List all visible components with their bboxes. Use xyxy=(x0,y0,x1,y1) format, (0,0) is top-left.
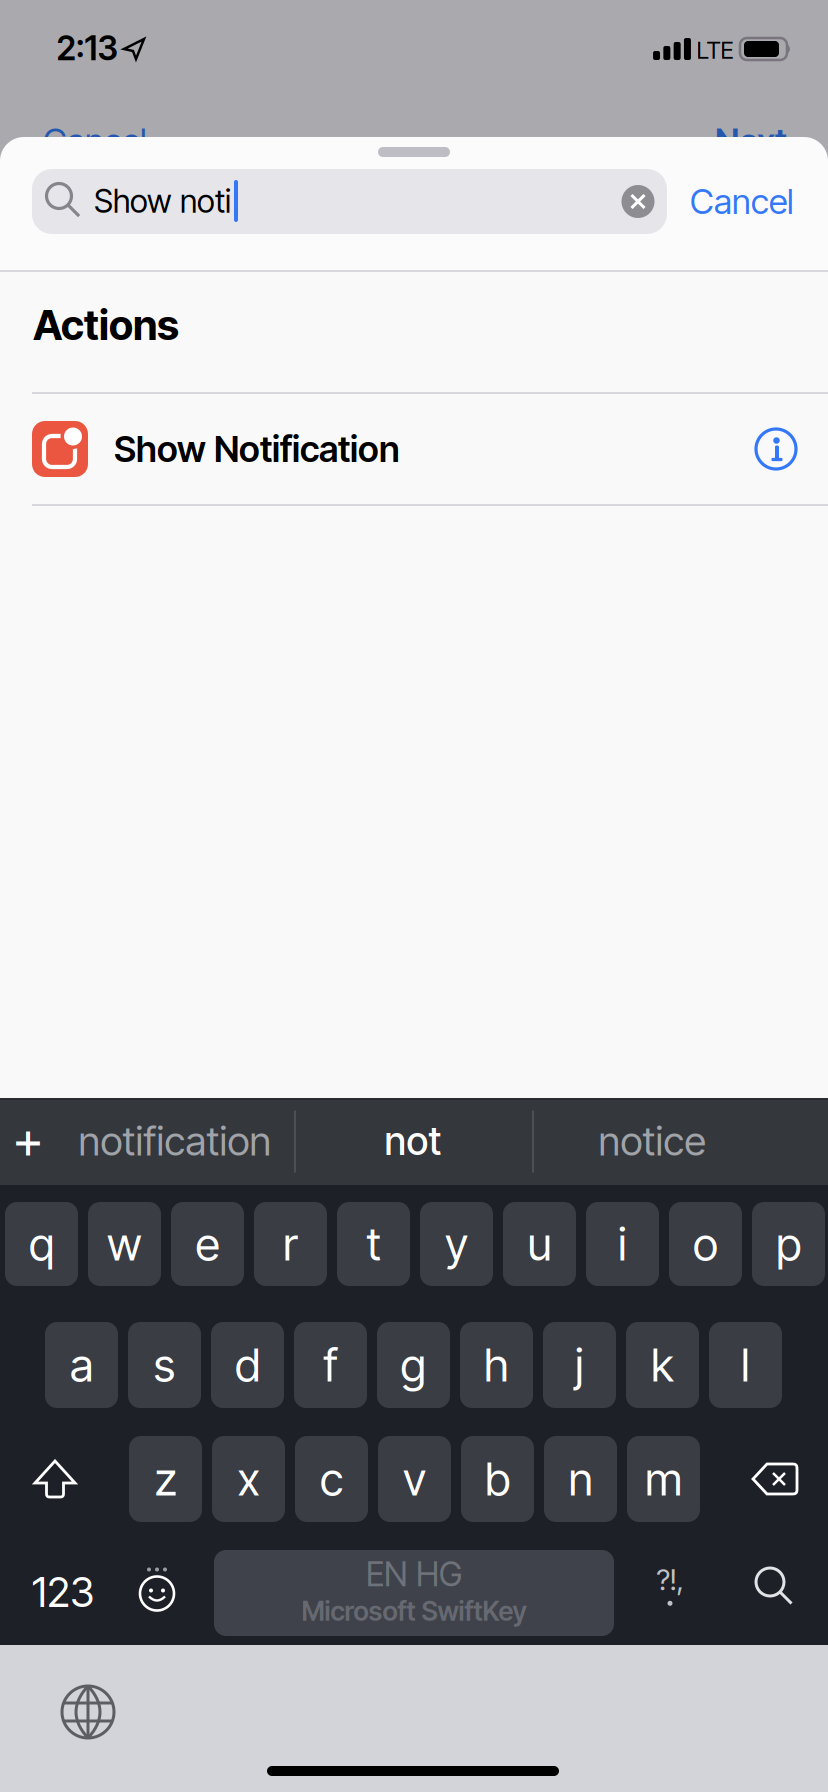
button[interactable]: d xyxy=(211,1322,284,1408)
staticText: h xyxy=(484,1338,509,1392)
staticText: Actions xyxy=(33,301,179,349)
staticText: j xyxy=(575,1338,584,1392)
staticText: w xyxy=(107,1217,142,1271)
button[interactable]: w xyxy=(88,1202,161,1286)
button[interactable]: i xyxy=(586,1202,659,1286)
staticText: Cancel xyxy=(43,121,147,161)
button[interactable]: Shift xyxy=(35,1461,75,1497)
staticText: p xyxy=(776,1217,801,1271)
staticText: f xyxy=(323,1338,337,1392)
staticText: EN HG xyxy=(366,1554,462,1594)
staticText: m xyxy=(645,1452,682,1506)
button[interactable]: x xyxy=(212,1436,285,1522)
staticText: d xyxy=(235,1338,260,1392)
button[interactable]: f xyxy=(294,1322,367,1408)
button[interactable]: Show Notification xyxy=(0,393,828,505)
staticText: notice xyxy=(598,1117,705,1165)
button[interactable]: b xyxy=(461,1436,534,1522)
staticText: Microsoft SwiftKey xyxy=(301,1595,526,1627)
button[interactable]: Add word xyxy=(12,1109,43,1169)
button[interactable]: y xyxy=(420,1202,493,1286)
staticText: not xyxy=(384,1118,441,1164)
button[interactable]: q xyxy=(5,1202,78,1286)
button[interactable]: 123 xyxy=(32,1568,94,1616)
button[interactable]: e xyxy=(171,1202,244,1286)
staticText: k xyxy=(651,1338,674,1392)
button[interactable]: n xyxy=(544,1436,617,1522)
staticText: t xyxy=(366,1217,380,1271)
button[interactable]: g xyxy=(377,1322,450,1408)
staticText: n xyxy=(568,1452,592,1506)
button[interactable]: Punctuation xyxy=(656,1562,683,1606)
staticText: + xyxy=(12,1109,43,1169)
button[interactable]: u xyxy=(503,1202,576,1286)
button[interactable]: h xyxy=(460,1322,533,1408)
staticText: 2:13 xyxy=(56,28,117,68)
button[interactable]: s xyxy=(128,1322,201,1408)
button[interactable]: notice xyxy=(598,1117,705,1165)
staticText: c xyxy=(320,1452,343,1506)
button[interactable]: Search xyxy=(754,1566,793,1605)
button[interactable]: Next keyboard xyxy=(62,1686,114,1738)
button[interactable]: a xyxy=(45,1322,118,1408)
button[interactable]: notification xyxy=(78,1117,271,1165)
staticText: 123 xyxy=(32,1568,94,1616)
staticText: o xyxy=(693,1217,718,1271)
button[interactable]: j xyxy=(543,1322,616,1408)
staticText: a xyxy=(70,1338,93,1392)
button[interactable]: Emoji xyxy=(140,1567,174,1610)
button[interactable]: Delete xyxy=(753,1464,797,1494)
staticText: notification xyxy=(78,1117,271,1165)
staticText: Show noti xyxy=(94,182,231,220)
staticText: i xyxy=(618,1217,627,1271)
button[interactable]: t xyxy=(337,1202,410,1286)
staticText: l xyxy=(741,1338,750,1392)
button[interactable]: z xyxy=(129,1436,202,1522)
button[interactable]: Cancel xyxy=(690,181,794,222)
button[interactable]: o xyxy=(669,1202,742,1286)
staticText: u xyxy=(527,1217,551,1271)
staticText: s xyxy=(153,1338,175,1392)
staticText: v xyxy=(403,1452,426,1506)
button[interactable]: m xyxy=(627,1436,700,1522)
staticText: z xyxy=(154,1452,176,1506)
staticText: Show Notification xyxy=(114,428,400,470)
staticText: r xyxy=(283,1217,298,1271)
button[interactable]: not xyxy=(384,1118,441,1164)
button[interactable]: Show noti xyxy=(32,169,667,234)
button[interactable]: r xyxy=(254,1202,327,1286)
staticText: ?!, xyxy=(656,1562,683,1597)
staticText: e xyxy=(195,1217,219,1271)
button[interactable]: Details xyxy=(756,429,796,469)
staticText: q xyxy=(29,1217,54,1271)
staticText: LTE xyxy=(696,36,733,64)
button[interactable]: Space xyxy=(214,1550,614,1636)
staticText: g xyxy=(400,1338,426,1392)
staticText: Next xyxy=(715,121,787,161)
staticText: x xyxy=(237,1452,259,1506)
staticText: Cancel xyxy=(690,181,794,222)
button[interactable]: k xyxy=(626,1322,699,1408)
staticText: b xyxy=(485,1452,510,1506)
button[interactable]: l xyxy=(709,1322,782,1408)
button[interactable]: v xyxy=(378,1436,451,1522)
button[interactable]: p xyxy=(752,1202,825,1286)
button[interactable]: c xyxy=(295,1436,368,1522)
staticText: y xyxy=(445,1217,468,1271)
